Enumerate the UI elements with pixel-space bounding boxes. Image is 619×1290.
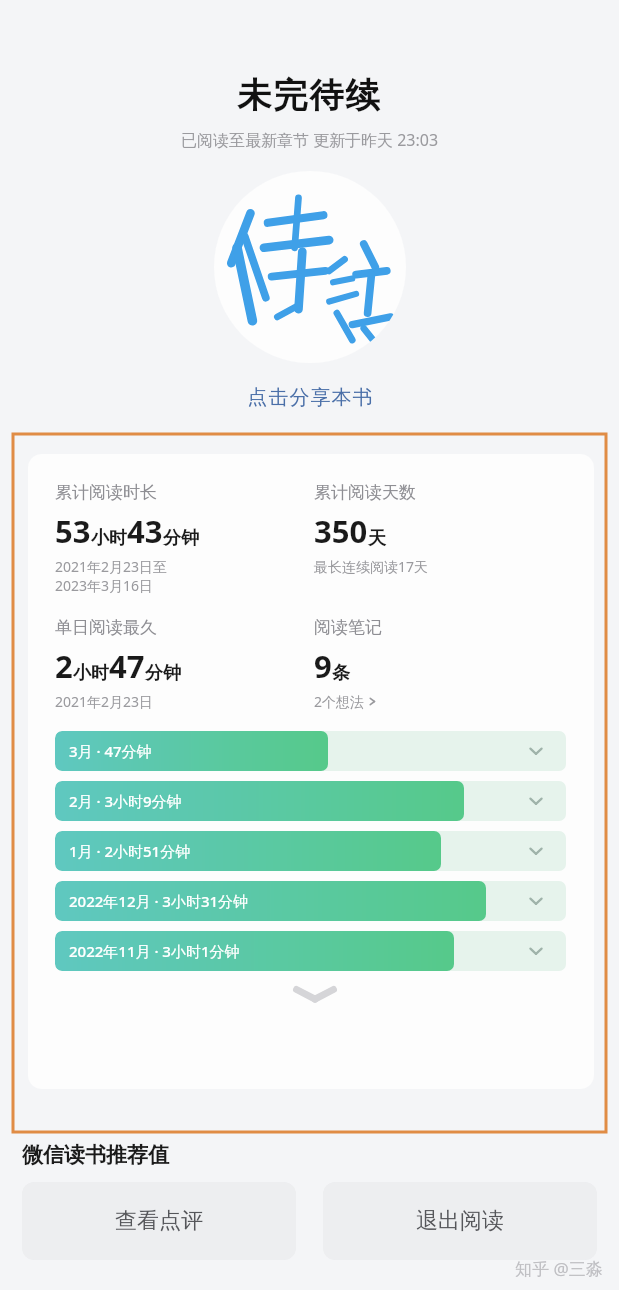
staticText: 2021年2月23日至 [55,557,168,576]
button[interactable]: 查看点评 [22,1182,296,1260]
staticText: 累计阅读时长 [55,482,157,503]
staticText: 分钟 [145,662,181,685]
button[interactable]: 3月 · 47分钟 [55,731,566,771]
button[interactable]: 2022年12月 · 3小时31分钟 [55,881,566,921]
staticText: 最长连续阅读17天 [314,557,429,576]
button[interactable]: Expand more [55,985,574,1003]
staticText: 350 [314,510,368,552]
staticText: 条 [332,662,350,685]
staticText: 2023年3月16日 [55,576,154,595]
staticText: 未完待续 [0,74,619,117]
other: Expand more [293,985,337,1003]
staticText: 天 [368,527,386,550]
staticText: 3月 · 47分钟 [69,741,152,761]
staticText: 查看点评 [115,1207,203,1235]
button[interactable]: 2022年11月 · 3小时1分钟 [55,931,566,971]
staticText: 2022年11月 · 3小时1分钟 [69,941,240,961]
staticText: 2个想法 [314,692,365,711]
staticText: 2 [55,645,73,687]
staticText: 2022年12月 · 3小时31分钟 [69,891,249,911]
staticText: 小时 [73,662,109,685]
staticText: 点击分享本书 [247,385,373,410]
button[interactable]: 2月 · 3小时9分钟 [55,781,566,821]
staticText: 微信读书推荐值 [22,1142,169,1168]
staticText: 2月 · 3小时9分钟 [69,791,182,811]
staticText: 2021年2月23日 [55,692,154,711]
button[interactable]: 退出阅读 [323,1182,597,1260]
staticText: 退出阅读 [416,1207,504,1235]
staticText: 阅读笔记 [314,617,382,638]
staticText: 单日阅读最久 [55,617,157,638]
staticText: 53 [55,510,91,552]
staticText: 小时 [91,527,127,550]
button[interactable]: 1月 · 2小时51分钟 [55,831,566,871]
staticText: 累计阅读天数 [314,482,416,503]
staticText: 1月 · 2小时51分钟 [69,841,191,861]
staticText: 47 [109,645,145,687]
staticText: 知乎 @三淼 [515,1257,603,1280]
staticText: 分钟 [163,527,199,550]
staticText: 43 [127,510,163,552]
button[interactable]: 点击分享本书 [0,385,619,410]
staticText: 9 [314,645,332,687]
staticText: 已阅读至最新章节 更新于昨天 23:03 [0,129,619,151]
